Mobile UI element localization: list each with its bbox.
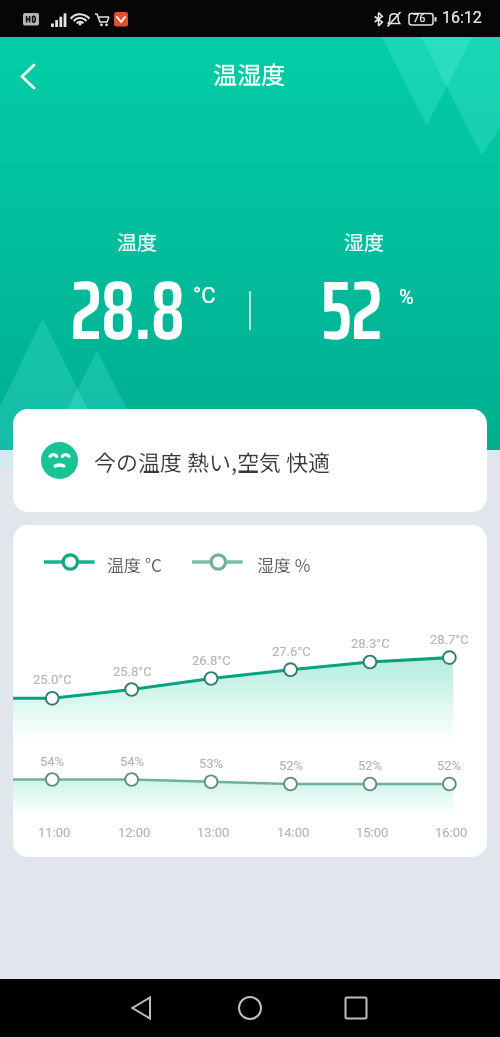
- staticText: 52%: [437, 758, 462, 773]
- button[interactable]: 今の温度 熱い,空気 快適: [13, 409, 487, 512]
- staticText: 26.8°C: [192, 653, 231, 668]
- staticText: 今の温度 熱い,空気 快適: [94, 445, 330, 477]
- staticText: 16:00: [435, 825, 468, 840]
- staticText: %: [399, 285, 414, 308]
- staticText: 25.8°C: [113, 664, 152, 679]
- staticText: °C: [193, 283, 216, 309]
- staticText: 13:00: [197, 825, 230, 840]
- staticText: 25.0°C: [33, 672, 72, 687]
- staticText: 52: [321, 246, 383, 375]
- staticText: 12:00: [118, 825, 151, 840]
- staticText: 76: [413, 12, 426, 25]
- staticText: 54%: [120, 754, 145, 769]
- button[interactable]: Back: [115, 979, 171, 1037]
- staticText: 27.6°C: [272, 644, 311, 659]
- staticText: 温度 °C: [107, 552, 162, 577]
- staticText: 52%: [358, 758, 383, 773]
- staticText: 16:12: [442, 8, 482, 27]
- staticText: 28.3°C: [351, 636, 390, 651]
- staticText: 28.8: [71, 246, 185, 375]
- staticText: 温度: [117, 227, 157, 256]
- staticText: 湿度 %: [257, 552, 311, 577]
- staticText: 53%: [199, 756, 224, 771]
- staticText: 54%: [40, 754, 65, 769]
- button[interactable]: Recent apps: [328, 979, 384, 1037]
- staticText: 14:00: [277, 825, 310, 840]
- staticText: 15:00: [356, 825, 389, 840]
- staticText: 11:00: [38, 825, 71, 840]
- staticText: 湿度: [344, 227, 384, 256]
- button[interactable]: Home: [222, 979, 278, 1037]
- button[interactable]: Back: [2, 52, 50, 100]
- staticText: 52%: [279, 758, 304, 773]
- staticText: 温湿度: [213, 56, 285, 91]
- staticText: 28.7°C: [430, 632, 469, 647]
